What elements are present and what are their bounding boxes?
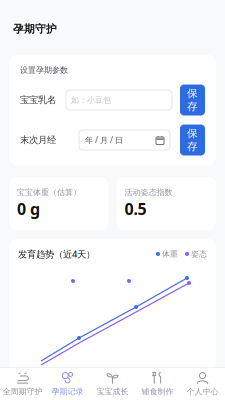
- staticText: 如：小豆包: [71, 95, 111, 105]
- staticText: 设置孕期参数: [20, 65, 68, 75]
- button[interactable]: 全周期守护: [0, 368, 45, 399]
- staticText: 宝宝乳名: [20, 94, 56, 106]
- staticText: 存: [187, 100, 198, 113]
- staticText: 个人中心: [186, 387, 218, 396]
- staticText: 姿态: [191, 249, 207, 259]
- staticText: 保: [187, 87, 198, 100]
- button[interactable]: 个人中心: [180, 368, 225, 399]
- staticText: 全周期守护: [2, 387, 42, 396]
- button[interactable]: 宝宝成长: [90, 368, 135, 399]
- button[interactable]: 孕期记录: [45, 368, 90, 399]
- staticText: 保: [187, 127, 198, 140]
- staticText: 末次月经: [20, 134, 56, 146]
- button[interactable]: 保: [180, 124, 205, 155]
- staticText: 存: [187, 140, 198, 153]
- staticText: 0.5: [124, 198, 146, 219]
- staticText: 孕期记录: [51, 387, 83, 396]
- button[interactable]: 保: [180, 84, 205, 115]
- staticText: 宝宝体重（估算）: [17, 187, 81, 197]
- staticText: 发育趋势（近4天）: [18, 248, 95, 260]
- staticText: 体重: [162, 249, 178, 259]
- staticText: 0 g: [17, 198, 40, 219]
- staticText: 宝宝成长: [96, 387, 128, 396]
- staticText: 活动姿态指数: [124, 187, 172, 197]
- staticText: 辅食制作: [141, 387, 173, 396]
- staticText: 年 / 月 / 日: [85, 135, 123, 145]
- staticText: 孕期守护: [13, 22, 57, 35]
- button[interactable]: 辅食制作: [135, 368, 180, 399]
